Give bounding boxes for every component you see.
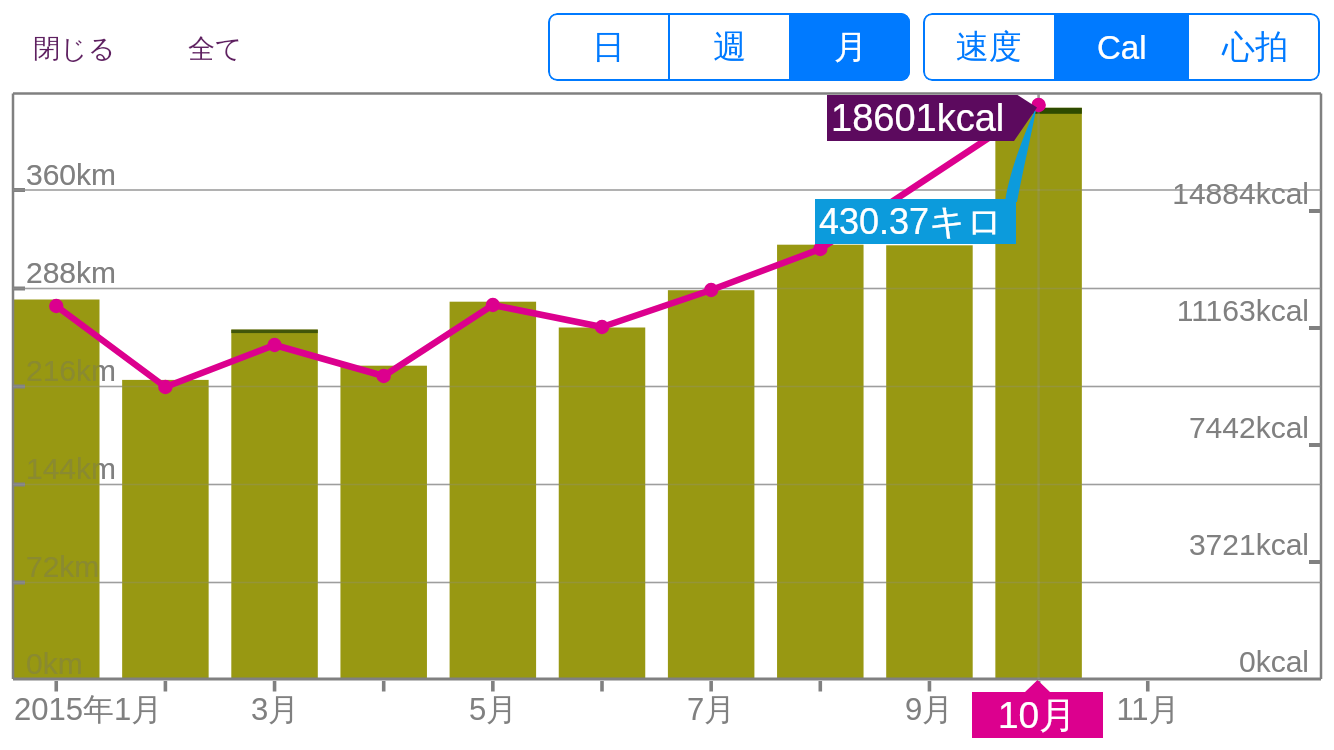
staticText: 216km (26, 354, 326, 750)
staticText: 2015年1月 (14, 690, 274, 750)
button[interactable]: 全て (182, 29, 249, 69)
staticText: 日 (592, 26, 625, 68)
button[interactable]: 2015年5月 (450, 94, 537, 680)
staticText: 430.37キロ (819, 199, 1003, 244)
staticText: 72km (26, 550, 326, 750)
staticText: 0km (26, 647, 326, 750)
staticText: 144km (26, 452, 326, 750)
staticText: 全て (188, 32, 243, 66)
staticText: 閉じる (33, 32, 116, 66)
button[interactable]: 週 (670, 13, 789, 81)
button[interactable]: 2015年3月 (231, 94, 318, 680)
button[interactable]: 2015年9月 (886, 94, 973, 680)
button[interactable]: 2015年2月 (122, 94, 209, 680)
staticText: 0km (26, 647, 326, 750)
staticText: 288km (26, 256, 326, 750)
staticText: 288km (26, 256, 326, 750)
staticText: 7442kcal (1009, 411, 1309, 750)
staticText: 7月 (581, 690, 841, 750)
staticText: 3月 (145, 690, 405, 750)
staticText: 3721kcal (1009, 528, 1309, 750)
button[interactable]: 10月 (972, 680, 1103, 738)
staticText: 216km (26, 354, 326, 750)
staticText: 5月 (363, 690, 623, 750)
staticText: 0kcal (1009, 645, 1309, 750)
button[interactable]: 2015年4月 (340, 94, 427, 680)
staticText: 10月 (998, 692, 1077, 739)
button[interactable]: 速度 (923, 13, 1054, 81)
staticText: 14884kcal (1009, 177, 1309, 750)
button[interactable]: 月 (791, 13, 910, 81)
staticText: 心拍 (1222, 26, 1288, 68)
button[interactable]: 心拍 (1189, 13, 1320, 81)
staticText: 9月 (799, 690, 1059, 750)
button[interactable]: 2015年7月 (668, 94, 755, 680)
button[interactable]: 2015年6月 (559, 94, 646, 680)
staticText: 速度 (956, 26, 1022, 68)
staticText: 18601kcal (831, 97, 1005, 139)
staticText: 360km (26, 158, 326, 750)
staticText: 360km (26, 158, 326, 750)
staticText: 72km (26, 550, 326, 750)
button[interactable]: 2015年10月 (995, 94, 1082, 680)
staticText: 週 (713, 26, 746, 68)
staticText: 月 (834, 26, 867, 68)
staticText: Cal (1097, 29, 1147, 66)
button[interactable]: 日 (548, 13, 668, 81)
button[interactable]: Cal (1056, 13, 1187, 81)
staticText: 144km (26, 452, 326, 750)
staticText: 11163kcal (1009, 294, 1309, 750)
button[interactable]: 2015年1月 (13, 94, 100, 680)
staticText: 11月 (1018, 690, 1278, 750)
button[interactable]: 2015年8月 (777, 94, 864, 680)
button[interactable]: 閉じる (27, 29, 122, 69)
